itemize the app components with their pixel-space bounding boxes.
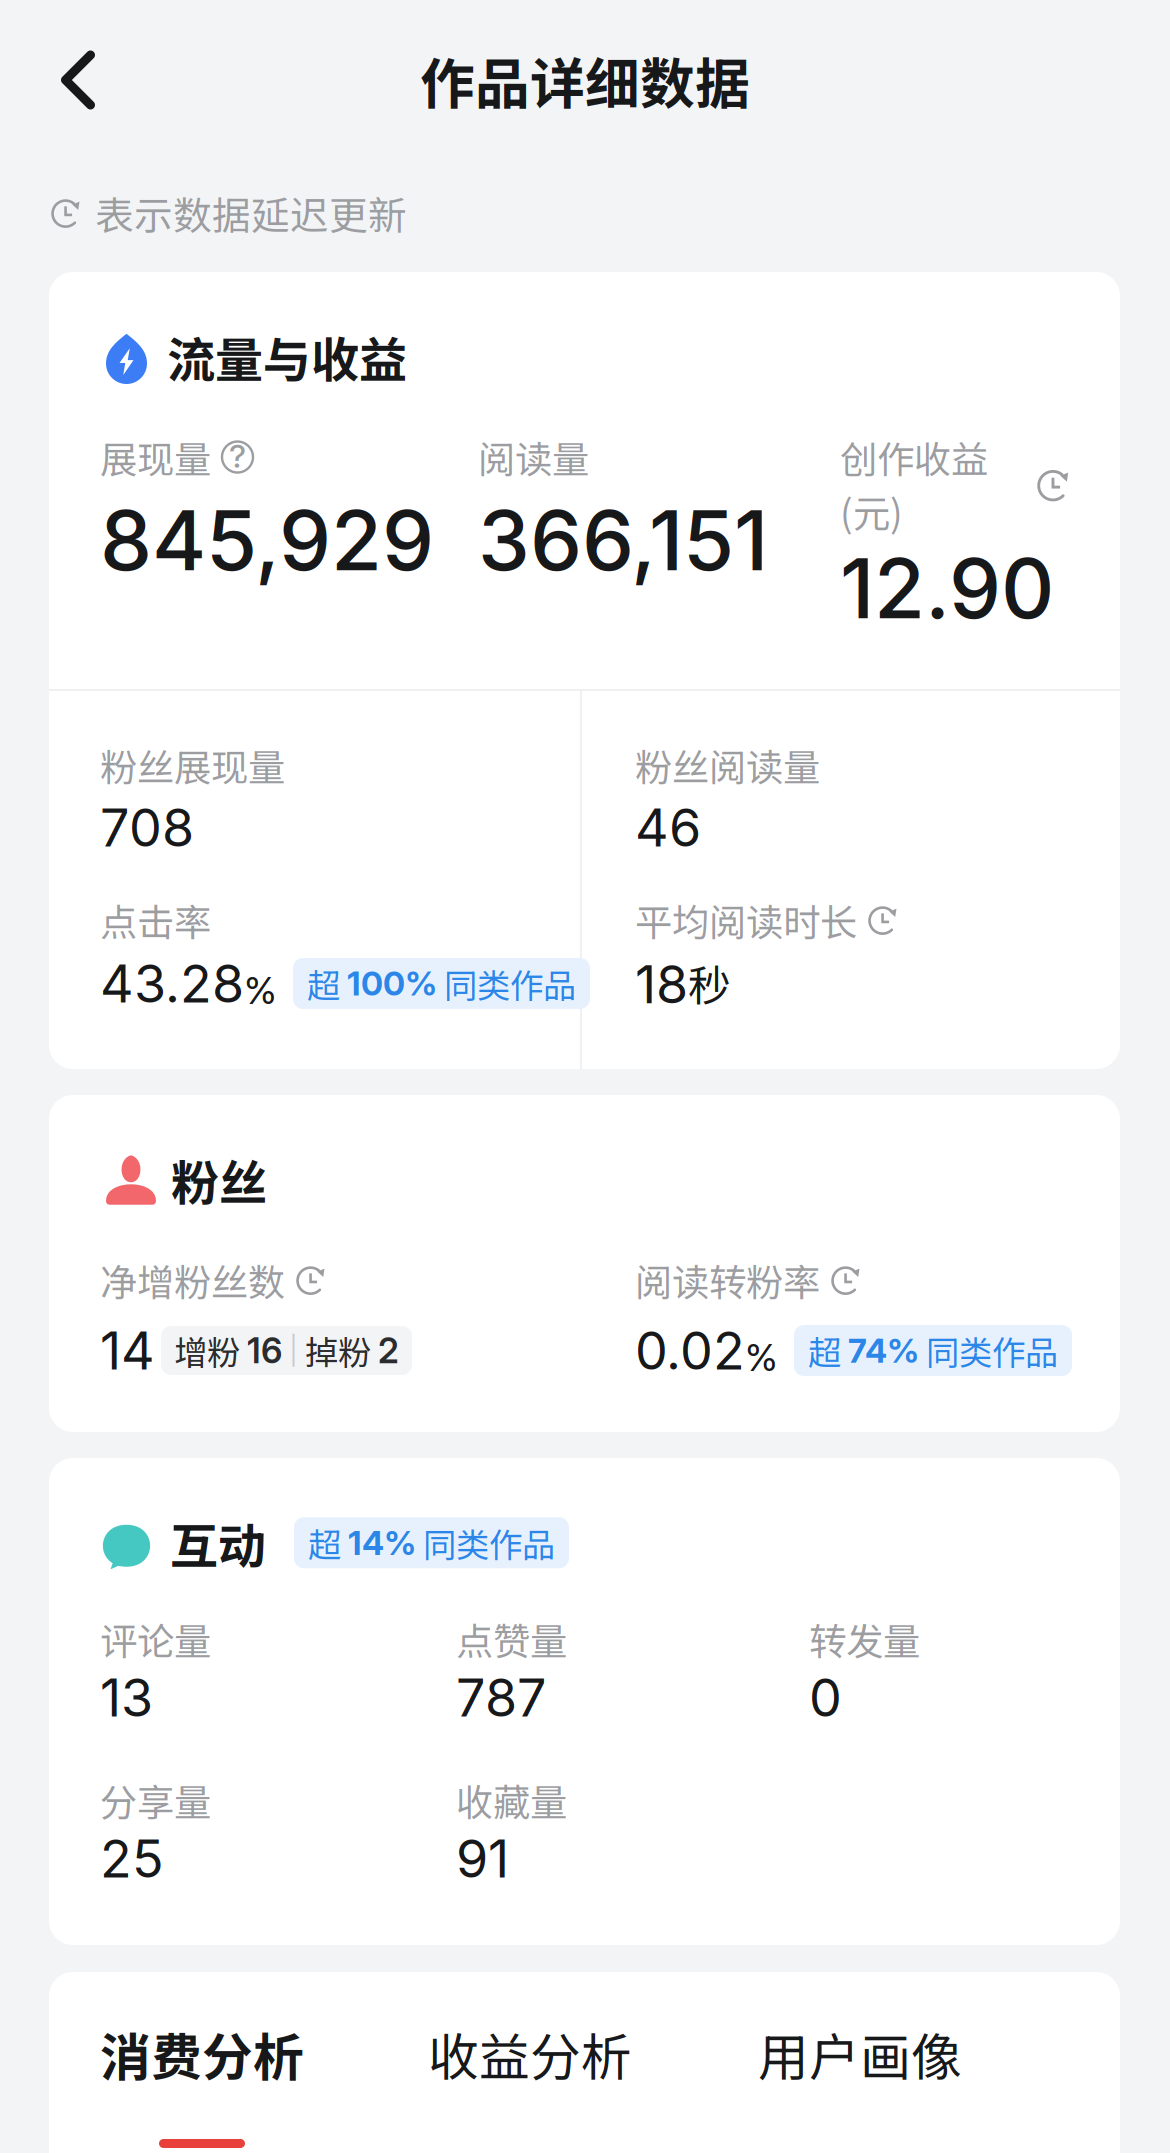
staticText: 2 xyxy=(378,1329,399,1371)
staticText: 增粉 xyxy=(174,1326,240,1375)
staticText: 13 xyxy=(100,1666,153,1729)
staticText: 787 xyxy=(456,1666,546,1729)
staticText: 流量与收益 xyxy=(167,322,407,391)
staticText: 粉丝展现量 xyxy=(100,738,285,792)
staticText: 平均阅读时长 xyxy=(635,893,857,947)
staticText: 16 xyxy=(247,1329,282,1371)
staticText: 74% xyxy=(848,1330,919,1371)
staticText: 消费分析 xyxy=(100,2017,304,2090)
staticText: 创作收益 xyxy=(840,430,988,484)
staticText: % xyxy=(244,968,277,1013)
staticText: (元) xyxy=(840,484,903,538)
button[interactable]: 用户画像 xyxy=(758,1982,968,2094)
staticText: 收藏量 xyxy=(456,1773,567,1827)
staticText: 阅读量 xyxy=(478,430,589,484)
staticText: 点击率 xyxy=(100,893,211,947)
staticText: 46 xyxy=(635,796,701,859)
staticText: | xyxy=(289,1334,298,1367)
button[interactable]: 消费分析 xyxy=(100,1982,354,2153)
staticText: 同类作品 xyxy=(423,1519,555,1567)
staticText: 18 xyxy=(635,953,688,1016)
staticText: 用户画像 xyxy=(758,2017,962,2090)
staticText: 845,929 xyxy=(100,490,434,590)
staticText: 分享量 xyxy=(100,1773,211,1827)
staticText: 净增粉丝数 xyxy=(100,1253,285,1307)
staticText: 秒 xyxy=(688,952,731,1014)
staticText: 43.28 xyxy=(100,952,244,1015)
staticText: 同类作品 xyxy=(444,959,576,1008)
staticText: 0 xyxy=(809,1666,842,1729)
staticText: 0.02 xyxy=(635,1319,745,1382)
button[interactable]: Back xyxy=(18,15,138,145)
button[interactable]: 收益分析 xyxy=(428,1982,638,2094)
staticText: 阅读转粉率 xyxy=(635,1253,820,1307)
staticText: 评论量 xyxy=(100,1612,211,1666)
staticText: 超 xyxy=(308,1519,341,1567)
staticText: 点赞量 xyxy=(456,1612,567,1666)
staticText: 14% xyxy=(348,1523,416,1563)
staticText: 708 xyxy=(100,796,194,859)
staticText: 14 xyxy=(100,1319,155,1382)
staticText: 互动 xyxy=(170,1508,266,1577)
staticText: 25 xyxy=(100,1827,164,1890)
staticText: 12.90 xyxy=(840,538,1054,638)
staticText: 展现量 xyxy=(100,430,211,484)
staticText: 转发量 xyxy=(809,1612,920,1666)
staticText: 超 xyxy=(307,959,340,1008)
staticText: 同类作品 xyxy=(926,1326,1058,1375)
staticText: 91 xyxy=(456,1827,509,1890)
staticText: 表示数据延迟更新 xyxy=(95,185,407,241)
staticText: ? xyxy=(229,437,246,475)
staticText: 作品详细数据 xyxy=(420,40,750,120)
staticText: 收益分析 xyxy=(428,2017,632,2090)
staticText: 366,151 xyxy=(478,490,768,590)
staticText: 超 xyxy=(808,1326,841,1375)
staticText: 掉粉 xyxy=(305,1326,371,1375)
staticText: 100% xyxy=(347,963,437,1004)
staticText: 粉丝 xyxy=(171,1145,267,1214)
staticText: % xyxy=(745,1335,778,1380)
staticText: 粉丝阅读量 xyxy=(635,738,820,792)
